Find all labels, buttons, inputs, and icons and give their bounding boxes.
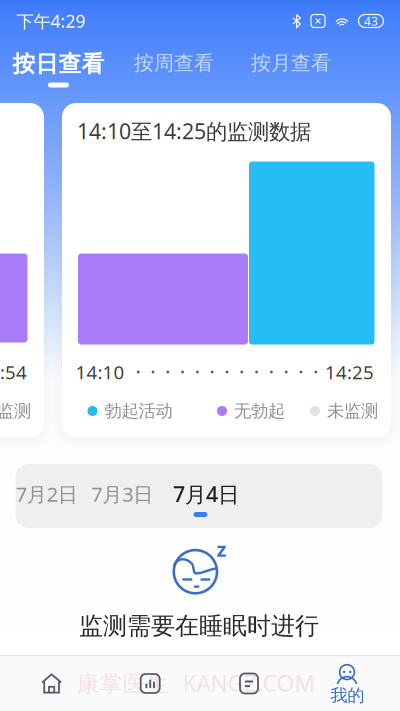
staticText: 按周查看 xyxy=(134,51,214,75)
button[interactable]: 7月2日 xyxy=(10,462,84,526)
staticText: 13:54 xyxy=(0,360,27,384)
staticText: 7月2日 xyxy=(16,481,78,507)
staticText: 14:10 xyxy=(75,360,124,384)
button[interactable]: 按月查看 xyxy=(243,37,339,89)
staticText: 7月3日 xyxy=(91,481,153,507)
staticText: 43 xyxy=(364,13,378,29)
button[interactable]: 按日查看 xyxy=(6,43,110,99)
staticText: 无勃起 xyxy=(234,400,285,422)
staticText: 我的 xyxy=(330,685,364,706)
staticText: 未监测 xyxy=(327,400,378,422)
button[interactable]: 按周查看 xyxy=(126,37,222,89)
staticText: 14:10至14:25的监测数据 xyxy=(77,117,311,145)
staticText: 勃起活动 xyxy=(104,400,172,422)
button[interactable]: 首页 xyxy=(2,656,102,711)
staticText: 按日查看 xyxy=(12,50,104,78)
button[interactable]: 7月3日 xyxy=(85,462,159,526)
button[interactable]: 报告 xyxy=(199,656,299,711)
button[interactable]: 7月4日 xyxy=(167,462,241,526)
staticText: 7月4日 xyxy=(173,480,239,508)
button[interactable]: 数据 xyxy=(100,656,200,711)
staticText: z xyxy=(216,536,226,562)
staticText: 监测需要在睡眠时进行 xyxy=(79,611,319,641)
staticText: 按月查看 xyxy=(251,51,331,75)
button[interactable]: 我的 xyxy=(297,656,397,711)
staticText: 14:25 xyxy=(325,360,374,384)
staticText: 未监测 xyxy=(0,400,31,422)
staticText: 康掌医生 KANGZ.COM xyxy=(76,668,315,698)
staticText: 下午4:29 xyxy=(16,9,85,32)
